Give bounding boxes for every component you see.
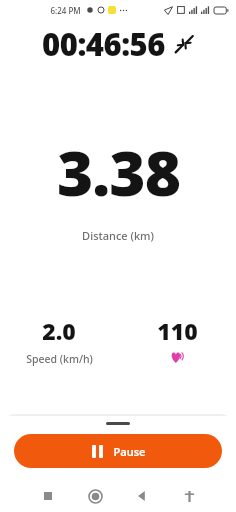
staticText: Speed (km/h) — [26, 352, 93, 366]
button[interactable]: Home — [83, 484, 107, 508]
staticText: 110 — [157, 315, 198, 346]
button[interactable]: Back — [130, 484, 154, 508]
staticText: 00:46:56 — [42, 23, 165, 65]
button[interactable]: Recent apps — [36, 484, 60, 508]
button[interactable]: 110 — [118, 315, 236, 364]
button[interactable]: 2.0 — [0, 315, 118, 366]
staticText: Distance (km) — [82, 228, 154, 243]
button[interactable]: Collapse — [173, 33, 195, 55]
staticText: 6:24 PM — [50, 5, 81, 16]
button[interactable]: Accessibility — [177, 484, 201, 508]
other: Heart rate — [170, 350, 184, 364]
staticText: Pause — [113, 444, 146, 459]
staticText: 3.38 — [57, 130, 180, 214]
button[interactable]: Pause — [14, 434, 222, 468]
staticText: 2.0 — [42, 315, 76, 346]
